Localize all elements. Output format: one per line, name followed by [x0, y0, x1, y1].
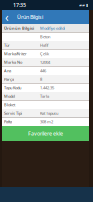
- staticText: Ana: [4, 68, 11, 73]
- button[interactable]: Favorilere ekle: [2, 126, 89, 141]
- staticText: Servis Tipi: [4, 111, 22, 116]
- staticText: Tür: [4, 43, 10, 48]
- staticText: Bloket: [4, 102, 15, 107]
- staticText: Parça: [4, 77, 14, 82]
- staticText: Marka No: [4, 60, 22, 65]
- staticText: Favorilere ekle: [28, 130, 63, 137]
- staticText: Tarla: [40, 94, 49, 99]
- staticText: Hafif: [40, 43, 48, 48]
- staticText: Beton: [40, 34, 50, 39]
- staticText: Pafta: [4, 119, 12, 124]
- staticText: Model: [4, 94, 15, 99]
- staticText: Marka/Kriter: [4, 51, 27, 56]
- staticText: Modifiye edildi: [40, 26, 65, 31]
- staticText: Tapu Kodu: [4, 85, 21, 90]
- staticText: 8: [40, 77, 42, 82]
- staticText: 1.442.35: [40, 85, 54, 90]
- staticText: 308 m2: [40, 119, 53, 124]
- button[interactable]: Back: [2, 10, 12, 24]
- staticText: ▰▰ ▮: [79, 3, 88, 7]
- staticText: 446: [40, 68, 46, 73]
- staticText: 17:35: [13, 1, 26, 9]
- staticText: Ürünün Bilgisi: [4, 26, 34, 31]
- staticText: Kat Tapusu: [40, 111, 58, 116]
- staticText: ‹: [5, 9, 9, 25]
- staticText: Ürün Bilgisi: [17, 13, 43, 21]
- staticText: Çelik: [40, 51, 49, 56]
- staticText: 12004: [40, 60, 50, 65]
